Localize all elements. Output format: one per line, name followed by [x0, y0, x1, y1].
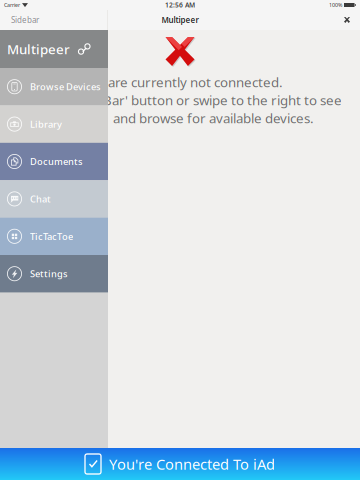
button[interactable]: Sidebar [0, 10, 56, 30]
staticText: Library [30, 118, 62, 130]
staticText: Chat [30, 193, 51, 205]
staticText: and browse for available devices. [113, 109, 314, 127]
staticText: You are currently not connected. [82, 73, 283, 91]
button[interactable]: Settings [0, 255, 108, 292]
staticText: TicTacToe [30, 230, 73, 242]
button[interactable]: You're Connected To iAd [0, 448, 360, 480]
staticText: Multipeer [7, 40, 70, 58]
button[interactable]: Library [0, 105, 108, 143]
staticText: Carrier [4, 1, 20, 9]
staticText: Multipeer [161, 15, 198, 25]
staticText: Settings [30, 267, 68, 280]
staticText: Documents [30, 155, 83, 168]
button[interactable]: Documents [0, 143, 108, 180]
staticText: Browse Devices [30, 80, 101, 93]
staticText: Sidebar [11, 15, 39, 25]
button[interactable]: Chat [0, 180, 108, 218]
button[interactable]: Browse Devices [0, 68, 108, 105]
staticText: You're Connected To iAd [109, 454, 275, 474]
staticText: Tap the 'Bar' button or swipe to the rig… [52, 91, 342, 109]
staticText: 12:56 AM [165, 1, 195, 9]
button[interactable]: TicTacToe [0, 218, 108, 255]
button[interactable]: Close [338, 10, 356, 30]
staticText: 100% [329, 1, 342, 9]
